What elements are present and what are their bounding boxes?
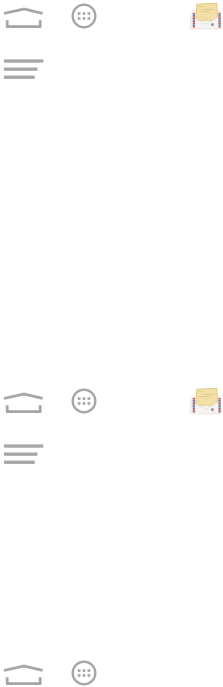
button[interactable]: Home — [2, 661, 46, 687]
button[interactable]: Home — [2, 4, 46, 30]
button[interactable]: Home — [2, 389, 46, 415]
button[interactable]: All apps — [71, 3, 97, 29]
button[interactable]: All apps — [71, 660, 97, 686]
button[interactable]: Menu — [4, 59, 44, 79]
button[interactable]: Menu — [4, 444, 44, 464]
button[interactable]: Mail — [190, 386, 221, 417]
button[interactable]: All apps — [71, 388, 97, 414]
button[interactable]: Mail — [190, 1, 221, 32]
